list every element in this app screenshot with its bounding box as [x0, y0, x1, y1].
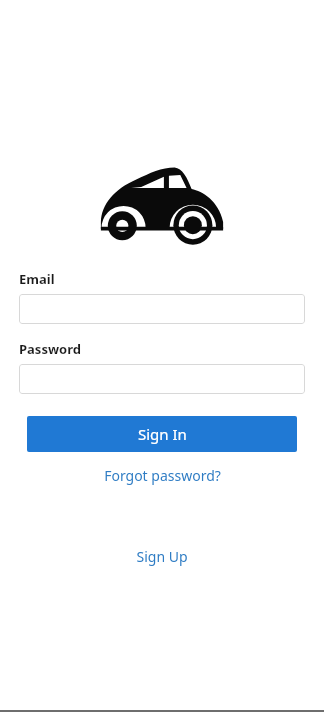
other: Car logo	[99, 166, 225, 236]
button[interactable]	[19, 294, 305, 324]
staticText: Sign In	[138, 424, 187, 444]
staticText: Sign Up	[136, 547, 188, 566]
staticText: Forgot password?	[104, 466, 221, 485]
button[interactable]: Sign In	[27, 416, 297, 452]
button[interactable]	[19, 364, 305, 394]
staticText: Password	[19, 340, 81, 358]
button[interactable]: Forgot password?	[96, 462, 229, 489]
button[interactable]: Sign Up	[128, 543, 196, 570]
staticText: Email	[19, 270, 55, 288]
